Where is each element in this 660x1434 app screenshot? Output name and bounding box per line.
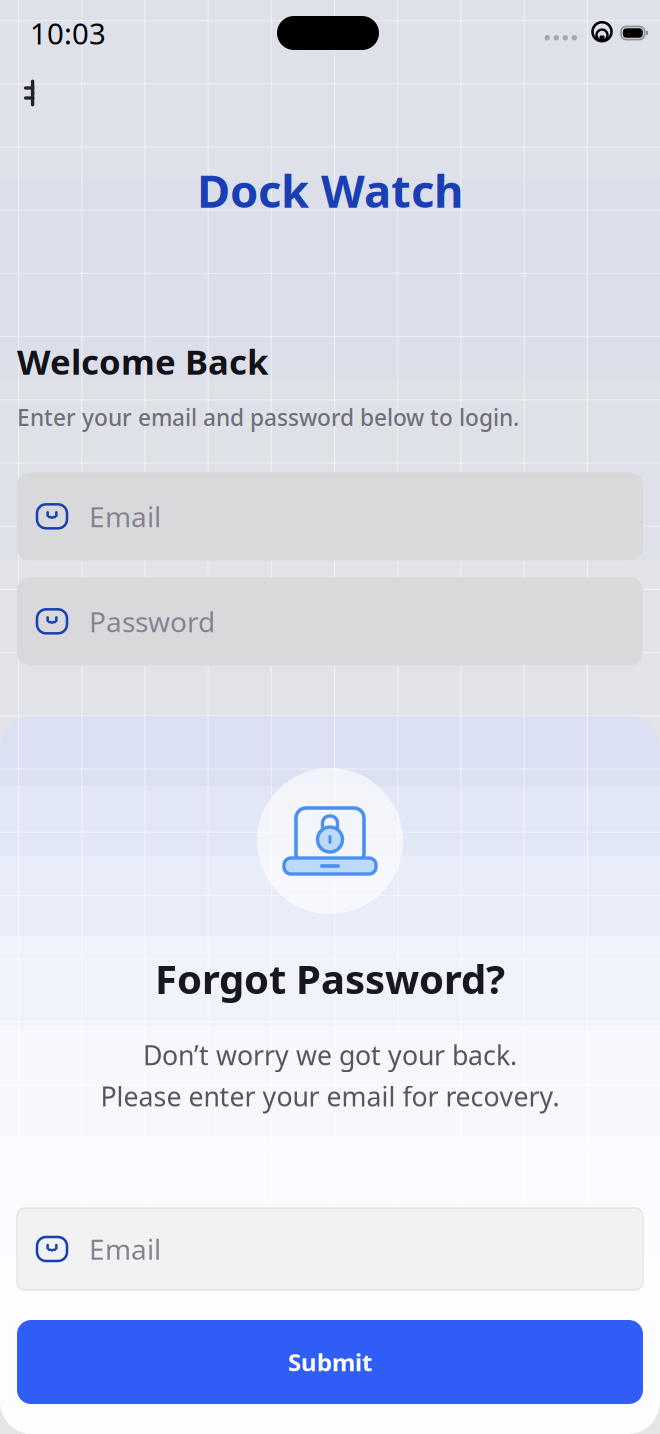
staticText: Email bbox=[89, 1230, 161, 1268]
staticText: Welcome Back bbox=[17, 338, 268, 384]
staticText: Don’t worry we got your back. bbox=[143, 1037, 517, 1072]
staticText: Password bbox=[89, 603, 215, 640]
staticText: Please enter your email for recovery. bbox=[100, 1078, 559, 1114]
staticText: Email bbox=[89, 498, 161, 535]
button[interactable]: Email bbox=[17, 1208, 643, 1290]
staticText: Dock Watch bbox=[197, 160, 463, 220]
button[interactable]: Submit bbox=[17, 1320, 643, 1404]
button[interactable]: Back bbox=[6, 70, 52, 116]
staticText: Forgot Password? bbox=[155, 952, 505, 1005]
staticText: Enter your email and password below to l… bbox=[17, 402, 519, 432]
staticText: Submit bbox=[288, 1346, 372, 1378]
staticText: 10:03 bbox=[30, 13, 106, 52]
